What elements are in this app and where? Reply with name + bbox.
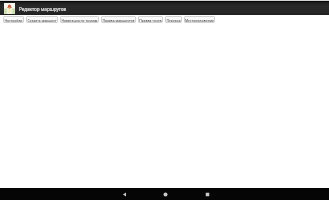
- staticText: Настройки: [4, 18, 23, 22]
- staticText: Правка точек: [139, 18, 162, 22]
- staticText: Правка маршрутов: [102, 18, 135, 22]
- button[interactable]: Местоположение: [184, 16, 215, 23]
- button[interactable]: Создать маршрут: [26, 16, 58, 23]
- button[interactable]: Recent apps: [201, 188, 213, 200]
- staticText: Навигация по точкам: [61, 18, 98, 22]
- staticText: Местоположение: [185, 18, 214, 22]
- staticText: Редактор маршрутов: [19, 6, 67, 12]
- staticText: Переход: [166, 18, 181, 22]
- button[interactable]: Home: [159, 188, 171, 200]
- button[interactable]: Back: [118, 188, 130, 200]
- button[interactable]: Правка маршрутов: [101, 16, 136, 23]
- staticText: Создать маршрут: [27, 18, 57, 22]
- button[interactable]: Правка точек: [138, 16, 163, 23]
- button[interactable]: Навигация по точкам: [60, 16, 99, 23]
- button[interactable]: Настройки: [3, 16, 24, 23]
- button[interactable]: Переход: [165, 16, 182, 23]
